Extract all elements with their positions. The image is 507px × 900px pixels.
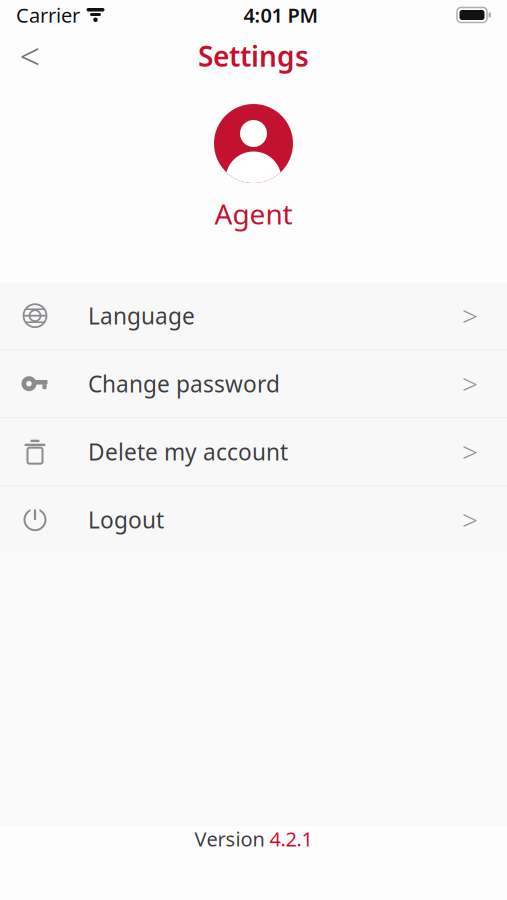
staticText: Carrier — [16, 2, 80, 28]
staticText: Delete my account — [88, 437, 288, 467]
staticText: Logout — [88, 505, 164, 535]
staticText: 4:01 PM — [243, 2, 318, 28]
staticText: Settings — [198, 37, 309, 75]
staticText: < — [19, 32, 40, 80]
staticText: 4.2.1 — [269, 825, 312, 852]
button[interactable]: Delete my account — [0, 418, 507, 485]
staticText: > — [462, 433, 478, 470]
staticText: > — [462, 297, 478, 334]
button[interactable]: Language — [0, 282, 507, 349]
button[interactable]: Back — [8, 34, 52, 78]
staticText: Agent — [214, 195, 292, 232]
button[interactable]: Change password — [0, 350, 507, 417]
staticText: Change password — [88, 369, 280, 399]
staticText: > — [462, 501, 478, 538]
staticText: Version — [194, 825, 264, 852]
staticText: Language — [88, 301, 195, 331]
staticText: > — [462, 365, 478, 402]
button[interactable]: Logout — [0, 486, 507, 553]
